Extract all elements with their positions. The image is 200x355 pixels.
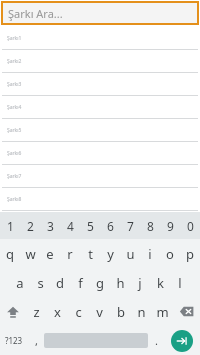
button[interactable]: , bbox=[28, 326, 44, 355]
button[interactable]: f bbox=[70, 268, 90, 297]
staticText: 6 bbox=[107, 218, 114, 234]
staticText: Şarkı Ara... bbox=[8, 6, 63, 21]
staticText: g bbox=[96, 274, 104, 292]
staticText: 4 bbox=[67, 218, 74, 234]
button[interactable]: 1 bbox=[0, 212, 20, 239]
button[interactable]: Şarkı Ara... bbox=[1, 1, 199, 25]
button[interactable]: 8 bbox=[140, 212, 160, 239]
button[interactable]: i bbox=[140, 239, 160, 268]
button[interactable]: Şarkı3 bbox=[0, 73, 200, 95]
button[interactable]: 0 bbox=[180, 212, 200, 239]
staticText: Şarkı8 bbox=[7, 196, 22, 203]
button[interactable]: x bbox=[47, 297, 68, 326]
staticText: f bbox=[78, 274, 83, 292]
button[interactable]: Şarkı8 bbox=[0, 188, 200, 210]
button[interactable]: 5 bbox=[80, 212, 100, 239]
staticText: v bbox=[96, 303, 103, 321]
button[interactable]: r bbox=[60, 239, 80, 268]
staticText: m bbox=[156, 303, 169, 321]
staticText: l bbox=[178, 274, 182, 292]
button[interactable]: 7 bbox=[120, 212, 140, 239]
button[interactable]: g bbox=[90, 268, 110, 297]
staticText: j bbox=[138, 274, 142, 292]
staticText: 5 bbox=[87, 218, 94, 234]
button[interactable]: p bbox=[180, 239, 200, 268]
staticText: w bbox=[25, 245, 36, 263]
staticText: 0 bbox=[187, 218, 194, 234]
button[interactable]: 6 bbox=[100, 212, 120, 239]
staticText: z bbox=[33, 303, 40, 321]
button[interactable]: y bbox=[100, 239, 120, 268]
staticText: x bbox=[54, 303, 61, 321]
button[interactable]: 2 bbox=[20, 212, 40, 239]
staticText: 2 bbox=[27, 218, 34, 234]
staticText: y bbox=[107, 245, 114, 263]
button[interactable]: Şarkı5 bbox=[0, 119, 200, 141]
staticText: o bbox=[166, 245, 174, 263]
staticText: r bbox=[67, 245, 73, 263]
button[interactable]: h bbox=[110, 268, 130, 297]
button[interactable]: s bbox=[30, 268, 50, 297]
button[interactable]: b bbox=[110, 297, 131, 326]
button[interactable]: ?123 bbox=[0, 326, 28, 355]
button[interactable]: Şarkı1 bbox=[0, 27, 200, 49]
button[interactable]: v bbox=[89, 297, 110, 326]
staticText: a bbox=[16, 274, 24, 292]
button[interactable]: l bbox=[170, 268, 190, 297]
staticText: Şarkı1 bbox=[7, 35, 22, 42]
button[interactable]: w bbox=[20, 239, 40, 268]
staticText: 8 bbox=[147, 218, 154, 234]
staticText: 7 bbox=[127, 218, 134, 234]
button[interactable]: . bbox=[148, 326, 164, 355]
button[interactable]: k bbox=[150, 268, 170, 297]
staticText: Şarkı6 bbox=[7, 150, 22, 157]
staticText: t bbox=[88, 245, 93, 263]
staticText: e bbox=[46, 245, 54, 263]
staticText: 3 bbox=[47, 218, 54, 234]
button[interactable]: n bbox=[131, 297, 152, 326]
button[interactable]: 4 bbox=[60, 212, 80, 239]
staticText: Şarkı3 bbox=[7, 81, 22, 88]
button[interactable]: a bbox=[10, 268, 30, 297]
staticText: b bbox=[117, 303, 125, 321]
staticText: k bbox=[157, 274, 164, 292]
button[interactable]: Şarkı4 bbox=[0, 96, 200, 118]
staticText: ?123 bbox=[5, 335, 23, 346]
staticText: Şarkı2 bbox=[7, 58, 22, 65]
button[interactable]: Shift bbox=[0, 297, 26, 326]
button[interactable]: t bbox=[80, 239, 100, 268]
button[interactable]: o bbox=[160, 239, 180, 268]
button[interactable]: j bbox=[130, 268, 150, 297]
button[interactable]: m bbox=[152, 297, 173, 326]
staticText: i bbox=[148, 245, 152, 263]
staticText: c bbox=[75, 303, 82, 321]
button[interactable]: e bbox=[40, 239, 60, 268]
staticText: . bbox=[155, 333, 158, 348]
staticText: Şarkı7 bbox=[7, 173, 22, 180]
button[interactable]: Şarkı6 bbox=[0, 142, 200, 164]
staticText: s bbox=[37, 274, 44, 292]
staticText: u bbox=[126, 245, 135, 263]
staticText: 1 bbox=[7, 218, 14, 234]
staticText: q bbox=[6, 245, 14, 263]
button[interactable]: c bbox=[68, 297, 89, 326]
button[interactable]: 3 bbox=[40, 212, 60, 239]
button[interactable]: q bbox=[0, 239, 20, 268]
staticText: 9 bbox=[167, 218, 174, 234]
button[interactable]: u bbox=[120, 239, 140, 268]
staticText: h bbox=[116, 274, 125, 292]
button[interactable]: d bbox=[50, 268, 70, 297]
button[interactable]: 9 bbox=[160, 212, 180, 239]
staticText: Şarkı5 bbox=[7, 127, 22, 134]
staticText: n bbox=[137, 303, 146, 321]
staticText: , bbox=[35, 333, 38, 348]
staticText: d bbox=[56, 274, 64, 292]
button[interactable]: Şarkı7 bbox=[0, 165, 200, 187]
staticText: p bbox=[186, 245, 194, 263]
button[interactable]: Backspace bbox=[173, 297, 200, 326]
button[interactable]: z bbox=[26, 297, 47, 326]
button[interactable]: Enter bbox=[171, 330, 193, 352]
button[interactable]: Şarkı2 bbox=[0, 50, 200, 72]
staticText: Şarkı4 bbox=[7, 104, 22, 111]
